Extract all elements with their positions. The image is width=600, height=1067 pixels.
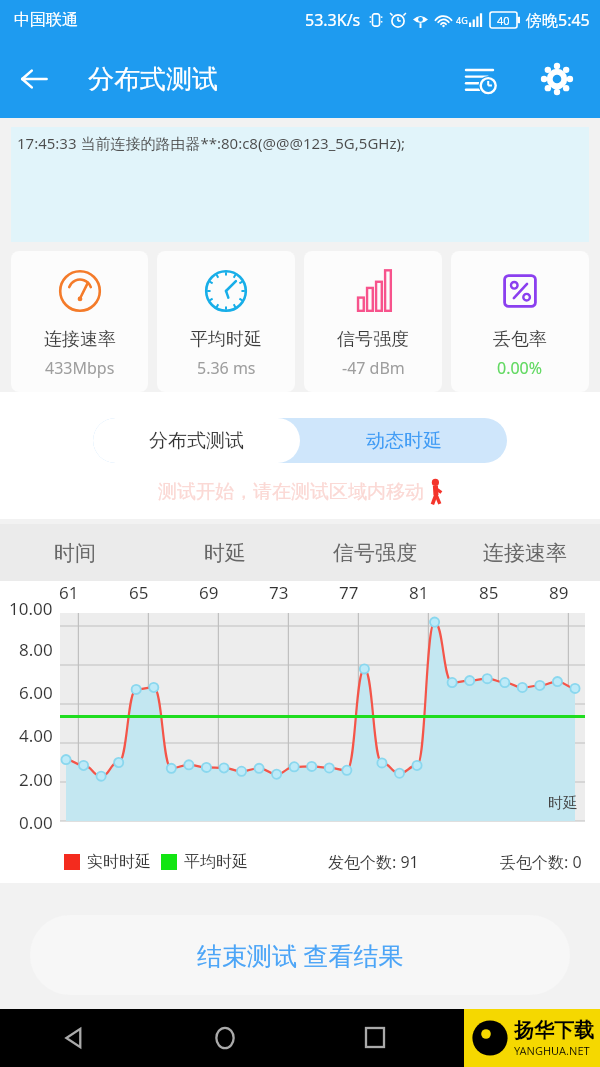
staticText: 丢包个数: 0 xyxy=(500,851,582,873)
staticText: 65 xyxy=(129,581,149,604)
staticText: 69 xyxy=(199,581,219,604)
staticText: 8.00 xyxy=(19,638,53,661)
staticText: 时间 xyxy=(54,540,96,566)
staticText: YANGHUA.NET xyxy=(514,1043,590,1058)
staticText: 89 xyxy=(549,581,569,604)
button[interactable]: 动态时延 xyxy=(300,418,507,463)
staticText: 61 xyxy=(59,581,79,604)
staticText: 时延 xyxy=(548,794,578,813)
button[interactable]: 信号强度 xyxy=(300,524,450,581)
staticText: 73 xyxy=(269,581,289,604)
staticText: 0.00% xyxy=(497,357,543,379)
staticText: 结束测试 查看结果 xyxy=(197,938,404,972)
staticText: 5.36 ms xyxy=(197,357,256,379)
staticText: 连接速率 xyxy=(44,328,116,351)
button[interactable]: 分布式测试 xyxy=(93,418,300,463)
staticText: 中国联通 xyxy=(14,10,78,30)
staticText: 4G xyxy=(456,14,468,26)
staticText: 傍晚5:45 xyxy=(526,9,590,31)
button[interactable]: Back xyxy=(8,53,60,105)
staticText: -47 dBm xyxy=(342,357,405,379)
button[interactable]: 连接速率 xyxy=(450,524,600,581)
staticText: 2.00 xyxy=(19,768,53,791)
button[interactable]: 丢包率 xyxy=(451,251,589,392)
staticText: 433Mbps xyxy=(45,357,115,379)
staticText: 81 xyxy=(409,581,429,604)
staticText: 平均时延 xyxy=(184,852,248,872)
button[interactable]: 结束测试 查看结果 xyxy=(30,915,570,995)
button[interactable]: 信号强度 xyxy=(304,251,442,392)
staticText: 动态时延 xyxy=(366,429,442,453)
staticText: 扬华下载 xyxy=(514,1018,594,1043)
staticText: 测试开始，请在测试区域内移动 xyxy=(158,480,424,504)
staticText: 4.00 xyxy=(19,724,53,747)
button[interactable]: Download xyxy=(450,1009,600,1067)
staticText: 40 xyxy=(497,13,510,28)
button[interactable]: 时间 xyxy=(0,524,150,581)
staticText: 实时时延 xyxy=(87,852,151,872)
button[interactable]: Back xyxy=(0,1009,150,1067)
staticText: 信号强度 xyxy=(333,540,417,566)
staticText: 连接速率 xyxy=(483,540,567,566)
staticText: 丢包率 xyxy=(493,328,547,351)
staticText: 77 xyxy=(339,581,359,604)
staticText: 6.00 xyxy=(19,681,53,704)
button[interactable]: 时延 xyxy=(150,524,300,581)
staticText: 17:45:33 当前连接的路由器**:80:c8(@@@123_5G,5GHz… xyxy=(17,133,405,153)
button[interactable]: 连接速率 xyxy=(11,251,148,392)
button[interactable]: History xyxy=(456,54,506,104)
staticText: 时延 xyxy=(204,540,246,566)
staticText: 发包个数: 91 xyxy=(328,851,419,873)
staticText: 分布式测试 xyxy=(88,63,218,96)
staticText: 0.00 xyxy=(19,811,53,834)
button[interactable]: Home xyxy=(150,1009,300,1067)
staticText: 10.00 xyxy=(9,597,53,620)
staticText: 53.3K/s xyxy=(305,9,361,31)
staticText: 信号强度 xyxy=(337,328,409,351)
staticText: 平均时延 xyxy=(190,328,262,351)
button[interactable]: Settings xyxy=(532,54,582,104)
button[interactable]: 平均时延 xyxy=(157,251,295,392)
button[interactable]: Recents xyxy=(300,1009,450,1067)
staticText: 85 xyxy=(479,581,499,604)
staticText: 分布式测试 xyxy=(149,429,244,453)
